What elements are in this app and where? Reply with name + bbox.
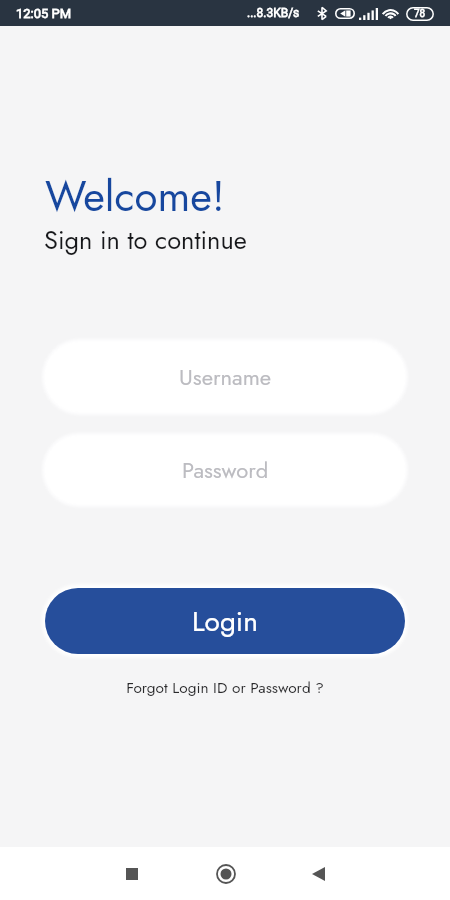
button[interactable]: Forgot Login ID or Password ? <box>0 675 450 701</box>
staticText: ...8.3KB/s <box>247 6 300 20</box>
button[interactable]: Home <box>196 847 256 900</box>
staticText: Sign in to continue <box>44 222 247 259</box>
staticText: Login <box>192 601 258 641</box>
staticText: Password <box>182 454 269 486</box>
button[interactable]: Username <box>45 342 405 412</box>
staticText: Welcome! <box>45 166 225 227</box>
staticText: 78 <box>414 8 426 20</box>
button[interactable]: Login <box>45 588 405 654</box>
staticText: Forgot Login ID or Password ? <box>0 677 450 699</box>
staticText: 12:05 PM <box>16 6 72 21</box>
button[interactable]: Recent apps <box>102 847 162 900</box>
button[interactable]: Back <box>288 847 348 900</box>
staticText: Username <box>179 361 272 393</box>
button[interactable]: Password <box>45 436 405 504</box>
